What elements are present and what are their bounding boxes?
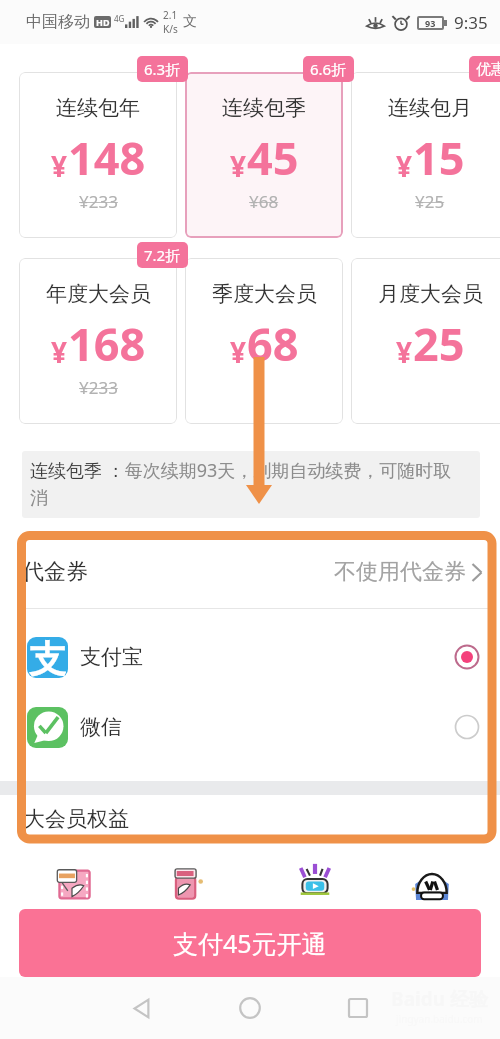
staticText: 支付宝 — [80, 644, 143, 670]
staticText: 优惠 — [476, 60, 500, 79]
staticText: K/s — [163, 22, 178, 36]
staticText: ¥25 — [415, 190, 445, 213]
button[interactable]: 连续包年 — [19, 72, 177, 238]
button[interactable]: Benefit 4 — [411, 858, 453, 900]
button[interactable]: 连续包季 — [185, 72, 343, 238]
button[interactable]: 代金券 — [0, 536, 500, 608]
staticText: 6.6折 — [310, 59, 347, 79]
staticText: 代金券 — [22, 558, 88, 586]
staticText: ¥ — [396, 333, 413, 371]
staticText: 2.1 — [163, 8, 178, 22]
staticText: 支付45元开通 — [173, 926, 327, 960]
button[interactable]: Recent apps — [335, 985, 381, 1031]
staticText: ¥ — [230, 147, 247, 185]
staticText: ¥ — [230, 333, 247, 371]
button[interactable]: 月度大会员 — [351, 258, 500, 424]
button[interactable]: Home — [227, 985, 273, 1031]
staticText: ¥ — [396, 147, 413, 185]
button[interactable]: 支 — [0, 622, 500, 692]
staticText: ¥233 — [79, 190, 118, 213]
staticText: 45 — [247, 127, 299, 188]
button[interactable]: 年度大会员 — [19, 258, 177, 424]
button[interactable]: 连续包月 — [351, 72, 500, 238]
staticText: 168 — [68, 313, 146, 374]
staticText: 中国移动 — [26, 12, 90, 32]
button[interactable]: Benefit 3 — [294, 858, 336, 900]
staticText: 4G — [114, 13, 125, 24]
staticText: ¥ — [51, 147, 68, 185]
staticText: ¥ — [51, 333, 68, 371]
staticText: 连续包季 ：每次续期93天，到期自动续费，可随时取消 — [30, 458, 464, 510]
staticText: 6.3折 — [144, 59, 181, 79]
staticText: 年度大会员 — [46, 281, 151, 307]
staticText: 连续包月 — [388, 95, 472, 121]
button[interactable]: Benefit 2 — [165, 858, 207, 900]
staticText: 25 — [413, 313, 465, 374]
button[interactable]: 支付45元开通 — [19, 909, 481, 977]
button[interactable]: 微信 — [0, 692, 500, 762]
staticText: 9:35 — [454, 11, 488, 34]
button[interactable]: Back — [119, 985, 165, 1031]
staticText: ¥68 — [249, 190, 279, 213]
staticText: 支 — [29, 637, 66, 677]
staticText: 148 — [68, 127, 146, 188]
staticText: 93 — [425, 17, 436, 29]
staticText: 不使用代金券 — [334, 558, 466, 586]
staticText: 文 — [183, 13, 197, 31]
staticText: 季度大会员 — [212, 281, 317, 307]
staticText: 大会员权益 — [24, 806, 129, 832]
staticText: 微信 — [80, 714, 122, 740]
staticText: HD — [96, 16, 110, 28]
button[interactable]: Benefit 1 — [51, 858, 93, 900]
button[interactable]: 季度大会员 — [185, 258, 343, 424]
staticText: 15 — [413, 127, 465, 188]
staticText: 7.2折 — [144, 245, 181, 265]
staticText: ¥233 — [79, 376, 118, 399]
staticText: 68 — [247, 313, 299, 374]
staticText: 连续包年 — [56, 95, 140, 121]
staticText: 月度大会员 — [378, 281, 483, 307]
staticText: 连续包季 — [222, 95, 306, 121]
